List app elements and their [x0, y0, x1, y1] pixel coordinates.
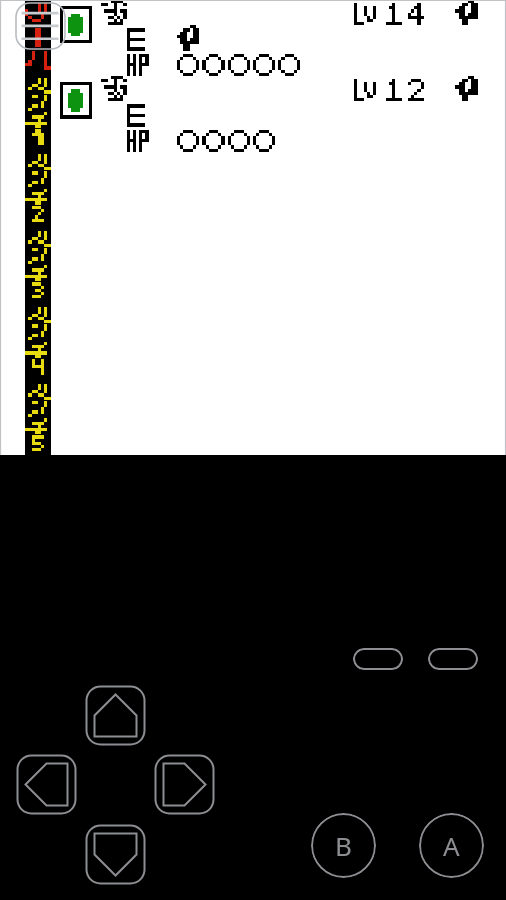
button[interactable]: Down: [85, 824, 146, 885]
button[interactable]: Right: [154, 754, 215, 815]
staticText: A: [443, 828, 460, 863]
button[interactable]: Up: [85, 685, 146, 746]
button[interactable]: Start: [428, 648, 478, 670]
staticText: B: [335, 828, 352, 863]
button[interactable]: Menu: [15, 2, 66, 50]
button[interactable]: Left: [16, 754, 77, 815]
button[interactable]: Select: [353, 648, 403, 670]
button[interactable]: A: [419, 813, 484, 878]
button[interactable]: B: [311, 813, 376, 878]
